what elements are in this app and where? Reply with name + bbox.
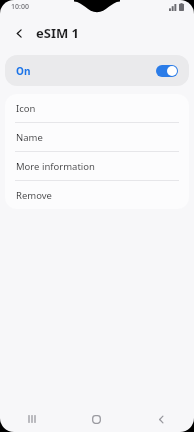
staticText: eSIM 1 <box>36 24 80 42</box>
staticText: Icon <box>16 102 36 115</box>
button[interactable]: Home <box>64 406 129 432</box>
staticText: Name <box>16 131 43 144</box>
staticText: Remove <box>16 189 52 202</box>
button[interactable]: Back <box>129 406 194 432</box>
button[interactable]: Back <box>9 23 29 43</box>
button[interactable]: Recent apps <box>0 406 64 432</box>
button[interactable]: Icon <box>5 94 189 122</box>
button[interactable]: Remove <box>5 181 189 209</box>
staticText: More information <box>16 160 95 173</box>
button[interactable]: More information <box>5 152 189 180</box>
staticText: On <box>16 64 31 78</box>
button[interactable]: Name <box>5 123 189 151</box>
staticText: 10:00 <box>11 2 29 12</box>
button[interactable]: On <box>5 55 189 86</box>
